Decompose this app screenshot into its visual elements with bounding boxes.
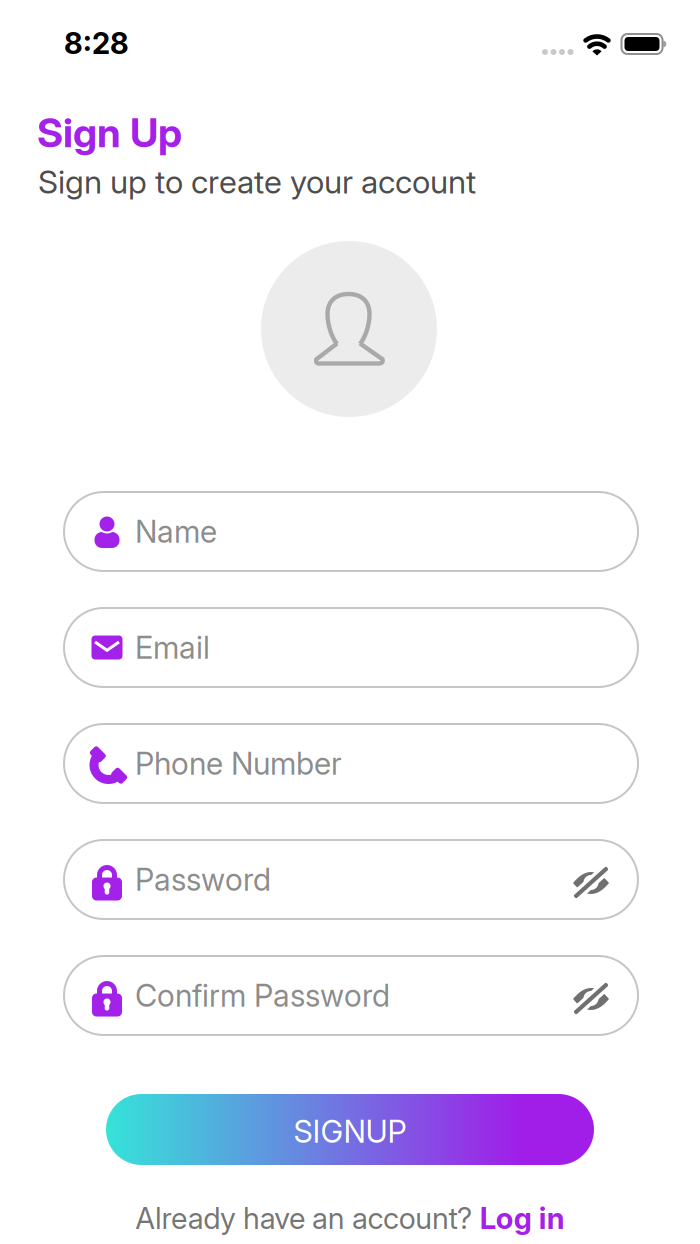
staticText: Sign up to create your account [38, 163, 476, 201]
staticText: Name [135, 513, 217, 550]
staticText: Log in [480, 1201, 565, 1236]
staticText: Sign Up [37, 109, 182, 156]
button[interactable]: SIGNUP [106, 1094, 594, 1165]
staticText: Email [135, 629, 210, 666]
staticText: 8:28 [64, 26, 129, 61]
button[interactable]: Log in [480, 1201, 565, 1236]
staticText: SIGNUP [293, 1113, 406, 1150]
staticText: Password [135, 861, 271, 898]
staticText: Confirm Password [135, 977, 390, 1014]
button[interactable]: Show password [571, 975, 611, 1015]
staticText: Phone Number [135, 745, 342, 782]
staticText: Already have an account? [135, 1201, 480, 1236]
button[interactable]: Show password [571, 859, 611, 899]
